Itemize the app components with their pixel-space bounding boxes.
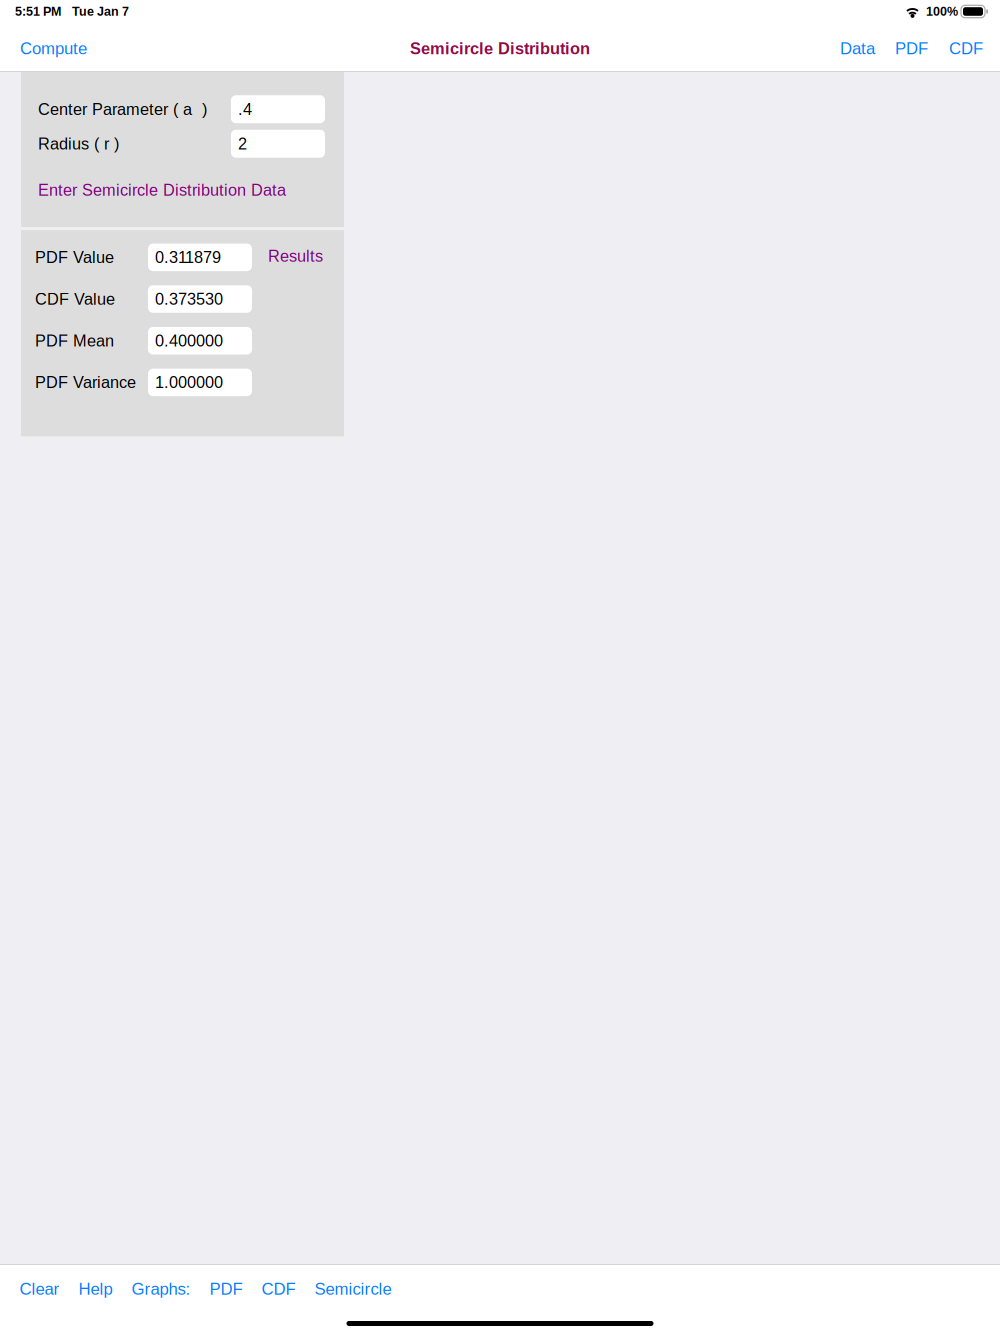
button[interactable]: Results — [21, 230, 323, 265]
button[interactable]: CDF — [252, 1267, 305, 1311]
button[interactable]: PDF — [890, 26, 933, 71]
staticText: Center Parameter ( a ) — [38, 100, 207, 118]
staticText: PDF Value — [35, 248, 114, 266]
staticText: 2 — [238, 135, 247, 153]
staticText: 100% — [926, 4, 958, 18]
staticText: .4 — [238, 100, 252, 118]
button[interactable]: 0.311879 — [148, 244, 252, 271]
button[interactable]: PDF — [200, 1267, 252, 1311]
button[interactable]: Semicircle — [305, 1267, 401, 1311]
staticText: Radius ( r ) — [38, 135, 119, 153]
staticText: Compute — [20, 39, 87, 58]
button[interactable]: CDF — [944, 26, 988, 71]
staticText: PDF — [895, 39, 928, 58]
staticText: 0.311879 — [155, 248, 221, 266]
staticText: CDF Value — [35, 290, 115, 308]
staticText: PDF — [209, 1280, 242, 1298]
staticText: Graphs: — [131, 1280, 190, 1298]
staticText: CDF — [949, 39, 983, 58]
staticText: PDF Variance — [35, 373, 136, 391]
button[interactable]: 1.000000 — [148, 369, 252, 396]
button[interactable]: 0.400000 — [148, 327, 252, 354]
staticText: Help — [78, 1280, 112, 1298]
button[interactable]: Help — [69, 1267, 122, 1311]
staticText: Clear — [19, 1280, 59, 1298]
staticText: 1.000000 — [155, 373, 223, 391]
staticText: Data — [840, 39, 875, 58]
staticText: CDF — [261, 1280, 295, 1298]
button[interactable]: Data — [835, 26, 880, 71]
staticText: Semicircle Distribution — [410, 39, 590, 58]
staticText: Tue Jan 7 — [72, 4, 129, 18]
staticText: 0.373530 — [155, 290, 223, 308]
staticText: Enter Semicircle Distribution Data — [38, 181, 286, 199]
staticText: Semicircle — [314, 1280, 391, 1298]
button[interactable]: Compute — [15, 26, 92, 71]
button[interactable]: Graphs: — [122, 1267, 200, 1311]
button[interactable]: 2 — [231, 130, 325, 158]
button[interactable]: Enter Semicircle Distribution Data — [21, 161, 344, 219]
button[interactable]: 0.373530 — [148, 285, 252, 313]
button[interactable]: .4 — [231, 95, 325, 123]
staticText: Results — [268, 247, 323, 265]
staticText: PDF Mean — [35, 332, 114, 350]
button[interactable]: Clear — [10, 1267, 69, 1311]
staticText: 5:51 PM — [15, 4, 61, 18]
staticText: 0.400000 — [155, 332, 223, 350]
